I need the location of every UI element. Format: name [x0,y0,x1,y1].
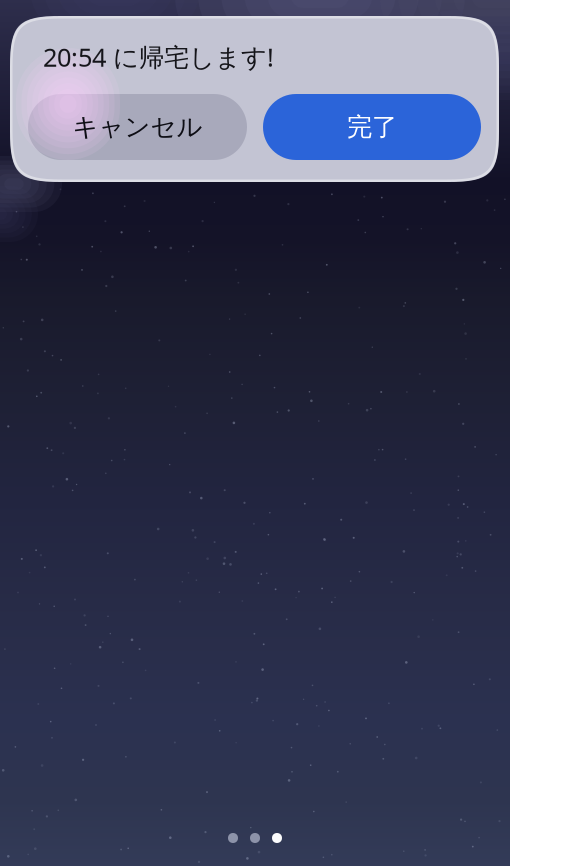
staticText: キャンセル [72,111,202,142]
staticText: 20:54 に帰宅します! [43,40,274,74]
button[interactable]: キャンセル [28,94,247,160]
button[interactable]: 完了 [263,94,481,160]
staticText: 完了 [347,111,397,142]
